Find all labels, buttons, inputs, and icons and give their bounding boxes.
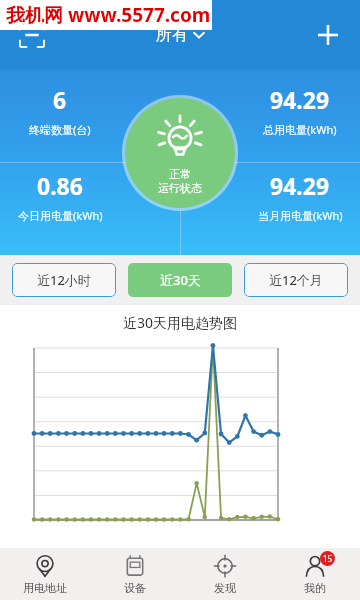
- staticText: 近30天用电趋势图: [0, 313, 360, 332]
- button[interactable]: Scan: [12, 15, 52, 55]
- button[interactable]: 设备: [90, 548, 180, 600]
- staticText: 总用电量(kWh): [263, 122, 337, 137]
- button[interactable]: 近12小时: [12, 263, 116, 297]
- staticText: 近12个月: [269, 271, 323, 289]
- staticText: 运行状态: [158, 181, 202, 195]
- staticText: 近30天: [160, 271, 201, 289]
- staticText: 发现: [214, 581, 236, 595]
- button[interactable]: 运行状态: [125, 98, 235, 208]
- staticText: 我机网 www.5577.com: [6, 2, 211, 28]
- staticText: 15: [323, 553, 333, 564]
- button[interactable]: 近12个月: [244, 263, 348, 297]
- staticText: 0.86: [37, 170, 83, 201]
- staticText: 设备: [124, 581, 146, 595]
- button[interactable]: Add: [308, 15, 348, 55]
- staticText: 今日用电量(kWh): [18, 208, 103, 223]
- button[interactable]: 用电地址: [0, 548, 90, 600]
- staticText: 所有: [156, 25, 188, 45]
- button[interactable]: 发现: [180, 548, 270, 600]
- staticText: 94.29: [270, 84, 330, 115]
- button[interactable]: 所有: [148, 21, 213, 49]
- staticText: 终端数量(台): [29, 122, 91, 137]
- staticText: 6: [53, 84, 67, 115]
- staticText: 用电地址: [23, 581, 67, 595]
- staticText: 我的: [304, 581, 326, 595]
- button[interactable]: 15: [270, 548, 360, 600]
- staticText: 94.29: [270, 170, 330, 201]
- staticText: 正常: [169, 167, 191, 181]
- staticText: 近12小时: [37, 271, 91, 289]
- staticText: 当月用电量(kWh): [258, 208, 343, 223]
- button[interactable]: 近30天: [128, 263, 232, 297]
